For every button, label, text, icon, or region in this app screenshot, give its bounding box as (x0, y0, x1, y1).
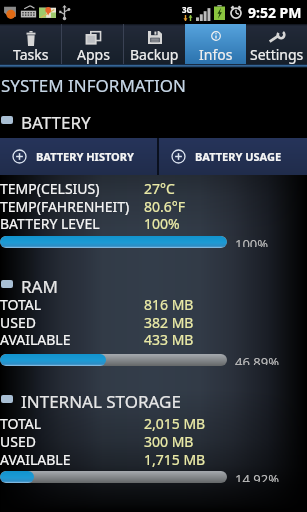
button[interactable]: Backup (124, 24, 185, 64)
staticText: Apps (77, 45, 110, 64)
staticText: BATTERY USAGE (195, 149, 282, 164)
staticText: TOTAL (0, 414, 144, 433)
staticText: 2,015 MB (144, 414, 206, 433)
staticText: 816 MB (144, 295, 194, 314)
staticText: 46.89% (235, 353, 280, 365)
staticText: Tasks (13, 45, 49, 64)
staticText: 9:52 PM (248, 3, 302, 22)
staticText: 3G (182, 4, 193, 15)
staticText: 27°C (144, 179, 175, 198)
staticText: 382 MB (144, 313, 194, 332)
button[interactable]: Tasks (0, 24, 62, 64)
staticText: SYSTEM INFORMATION (1, 74, 186, 97)
button[interactable]: Settings (246, 24, 307, 64)
staticText: AVAILABLE (0, 330, 144, 349)
staticText: 433 MB (144, 330, 194, 349)
button[interactable]: BATTERY HISTORY (0, 138, 157, 175)
staticText: 100% (144, 214, 180, 233)
staticText: Backup (130, 45, 179, 64)
staticText: RAM (21, 275, 58, 293)
staticText: TOTAL (0, 295, 144, 314)
staticText: Settings (250, 45, 304, 64)
staticText: 100% (235, 235, 269, 247)
button[interactable]: BATTERY USAGE (159, 138, 307, 175)
staticText: BATTERY (21, 111, 91, 129)
staticText: USED (0, 313, 144, 332)
staticText: INTERNAL STORAGE (21, 390, 181, 408)
staticText: 300 MB (144, 432, 194, 451)
button[interactable]: Apps (62, 24, 124, 64)
staticText: Infos (199, 45, 233, 64)
staticText: BATTERY HISTORY (36, 149, 134, 164)
staticText: TEMP(FAHRENHEIT) (0, 197, 144, 216)
staticText: 14.92% (235, 470, 280, 482)
staticText: AVAILABLE (0, 450, 144, 469)
staticText: TEMP(CELSIUS) (0, 179, 144, 198)
staticText: BATTERY LEVEL (0, 214, 144, 233)
staticText: 80.6°F (144, 197, 186, 216)
button[interactable]: Infos (185, 24, 246, 64)
staticText: 1,715 MB (144, 450, 206, 469)
staticText: USED (0, 432, 144, 451)
